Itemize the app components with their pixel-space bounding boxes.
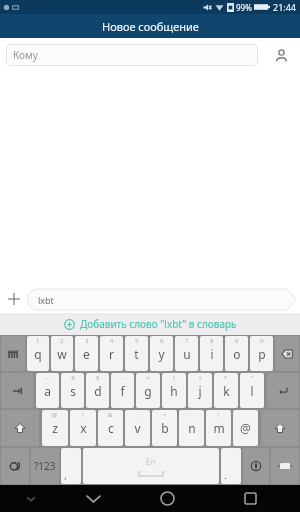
button[interactable]: # <box>61 373 84 408</box>
staticText: & <box>108 411 113 419</box>
button[interactable]: 8 <box>200 336 223 371</box>
staticText: / <box>217 411 220 419</box>
staticText: r <box>109 346 114 362</box>
button[interactable]: / <box>206 410 231 446</box>
staticText: p <box>258 346 266 362</box>
button[interactable]: Пробел <box>83 448 219 484</box>
button[interactable]: ( <box>162 373 186 408</box>
button[interactable]: & <box>98 410 123 446</box>
button[interactable]: 2 <box>51 336 73 371</box>
staticText: y <box>158 346 165 362</box>
staticText: o <box>233 346 241 362</box>
button[interactable]: 7 <box>175 336 198 371</box>
staticText: ) <box>199 374 201 382</box>
button[interactable]: Голосовой ввод <box>243 448 269 484</box>
button[interactable]: Назад <box>62 485 124 512</box>
button[interactable]: Выбрать контакт <box>268 42 294 68</box>
staticText: # <box>71 374 75 382</box>
staticText: f <box>120 383 125 399</box>
staticText: @ <box>52 411 58 419</box>
staticText: : <box>137 411 139 419</box>
button[interactable]: - <box>179 410 204 446</box>
staticText: ( <box>173 374 175 382</box>
button[interactable]: ~ <box>36 373 59 408</box>
button[interactable]: , <box>61 448 81 484</box>
button[interactable]: + <box>152 410 177 446</box>
staticText: u <box>183 346 191 362</box>
button[interactable]: Недавние приложения <box>210 485 290 512</box>
button[interactable]: Табуляция <box>1 373 33 408</box>
button[interactable]: = <box>136 373 160 408</box>
staticText: 3 <box>85 337 89 345</box>
button[interactable]: 9 <box>225 336 248 371</box>
button[interactable]: ?123 <box>31 448 59 484</box>
staticText: a <box>44 383 51 399</box>
button[interactable]: lxbt <box>28 289 296 310</box>
button[interactable]: Скрыть клавиатуру <box>271 448 299 484</box>
staticText: j <box>198 383 202 399</box>
staticText: ?123 <box>34 459 56 473</box>
staticText: Добавить слово "lxbt" в словарь <box>80 317 237 331</box>
staticText: s <box>70 383 76 399</box>
staticText: 21:44 <box>273 1 297 13</box>
staticText: 8 <box>210 337 214 345</box>
staticText: d <box>94 383 102 399</box>
button[interactable]: 1 <box>27 336 49 371</box>
staticText: z <box>52 420 58 436</box>
staticText: lxbt <box>38 294 54 306</box>
button[interactable]: Добавить слово "lxbt" в словарь <box>0 313 300 335</box>
staticText: 7 <box>185 337 189 345</box>
staticText: b <box>161 420 169 436</box>
button[interactable]: * <box>214 373 238 408</box>
staticText: $ <box>96 374 100 382</box>
button[interactable]: $ <box>86 373 109 408</box>
staticText: - <box>191 411 193 419</box>
staticText: k <box>223 383 230 399</box>
staticText: ~ <box>46 374 50 382</box>
button[interactable]: Свернуть <box>0 485 62 512</box>
staticText: c <box>108 420 114 436</box>
staticText: 9 <box>235 337 239 345</box>
staticText: * <box>224 374 228 382</box>
button[interactable]: Главный экран <box>124 485 210 512</box>
button[interactable]: : <box>125 410 150 446</box>
button[interactable]: 0 <box>250 336 273 371</box>
button[interactable]: @ <box>42 410 68 446</box>
button[interactable]: @ <box>233 410 258 446</box>
staticText: ! <box>82 411 84 419</box>
button[interactable]: ! <box>70 410 96 446</box>
button[interactable]: Shift <box>1 410 39 446</box>
button[interactable]: Удалить <box>275 336 299 371</box>
staticText: En <box>146 456 156 467</box>
button[interactable]: Переключить клавиатуру <box>1 336 25 371</box>
button[interactable]: " <box>240 373 264 408</box>
staticText: 99% <box>236 2 252 13</box>
staticText: g <box>144 383 152 399</box>
staticText: e <box>83 346 90 362</box>
staticText: m <box>213 420 225 436</box>
button[interactable]: Ввод <box>267 373 299 408</box>
button[interactable]: - <box>111 373 134 408</box>
staticText: x <box>80 420 87 436</box>
button[interactable]: Shift <box>261 410 299 446</box>
staticText: 2 <box>60 337 64 345</box>
staticText: = <box>146 374 150 382</box>
staticText: l <box>250 383 254 399</box>
button[interactable]: ) <box>188 373 212 408</box>
button[interactable]: 3 <box>75 336 98 371</box>
staticText: 6 <box>160 337 164 345</box>
button[interactable]: Смайлы <box>1 448 29 484</box>
staticText: n <box>188 420 196 436</box>
staticText: 1 <box>36 337 40 345</box>
button[interactable]: Кому <box>6 44 258 66</box>
staticText: i <box>210 346 214 362</box>
button[interactable]: . <box>221 448 241 484</box>
staticText: w <box>57 346 67 362</box>
staticText: . <box>224 469 227 481</box>
button[interactable]: 5 <box>125 336 148 371</box>
staticText: Новое сообщение <box>102 19 199 34</box>
button[interactable]: Добавить вложение <box>0 285 28 313</box>
button[interactable]: 6 <box>150 336 173 371</box>
staticText: @ <box>240 420 251 436</box>
button[interactable]: 4 <box>100 336 123 371</box>
